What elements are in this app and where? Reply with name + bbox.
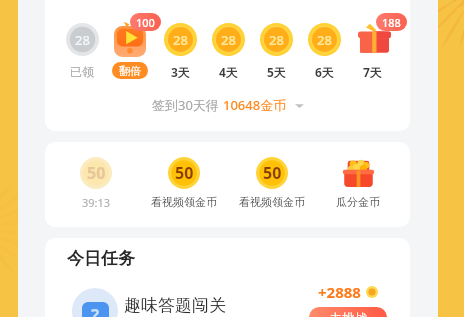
button[interactable]: 瓜分金币 [315, 142, 401, 227]
staticText: 4天 [219, 64, 238, 80]
staticText: 28 [317, 31, 332, 49]
staticText: 10648金币 [223, 96, 287, 114]
button[interactable]: 28 [202, 10, 254, 90]
staticText: 去挑战 [329, 310, 368, 317]
staticText: 28 [173, 31, 188, 49]
staticText: 6天 [315, 64, 334, 80]
staticText: 188 [382, 15, 401, 30]
staticText: 3天 [171, 64, 190, 80]
staticText: 7天 [363, 64, 382, 80]
staticText: 签到30天得 [152, 96, 223, 114]
button[interactable]: 50 [141, 142, 227, 227]
button[interactable]: 28 [250, 10, 302, 90]
staticText: 50 [263, 162, 282, 184]
button[interactable]: 7天 [346, 10, 398, 90]
staticText: 看视频领金币 [239, 195, 305, 209]
button[interactable]: 28 [56, 10, 108, 90]
button[interactable]: 28 [298, 10, 350, 90]
staticText: ? [91, 304, 100, 317]
staticText: 已领 [70, 64, 94, 79]
button[interactable]: 28 [154, 10, 206, 90]
staticText: 100 [136, 15, 155, 30]
staticText: 看视频领金币 [151, 195, 217, 209]
staticText: 50 [87, 162, 106, 184]
staticText: 趣味答题闯关 [124, 295, 226, 316]
button[interactable]: 50 [53, 142, 139, 227]
button[interactable]: 50 [229, 142, 315, 227]
button[interactable]: 翻倍 [104, 10, 156, 90]
staticText: 5天 [267, 64, 286, 80]
staticText: 翻倍 [119, 64, 141, 78]
staticText: +2888 [318, 282, 361, 302]
staticText: 28 [221, 31, 236, 49]
staticText: 今日任务 [67, 248, 135, 269]
staticText: 28 [75, 31, 90, 49]
staticText: 28 [269, 31, 284, 49]
staticText: 50 [175, 162, 194, 184]
staticText: 39:13 [82, 195, 111, 210]
button[interactable]: ? [72, 282, 387, 317]
staticText: 瓜分金币 [336, 195, 380, 209]
